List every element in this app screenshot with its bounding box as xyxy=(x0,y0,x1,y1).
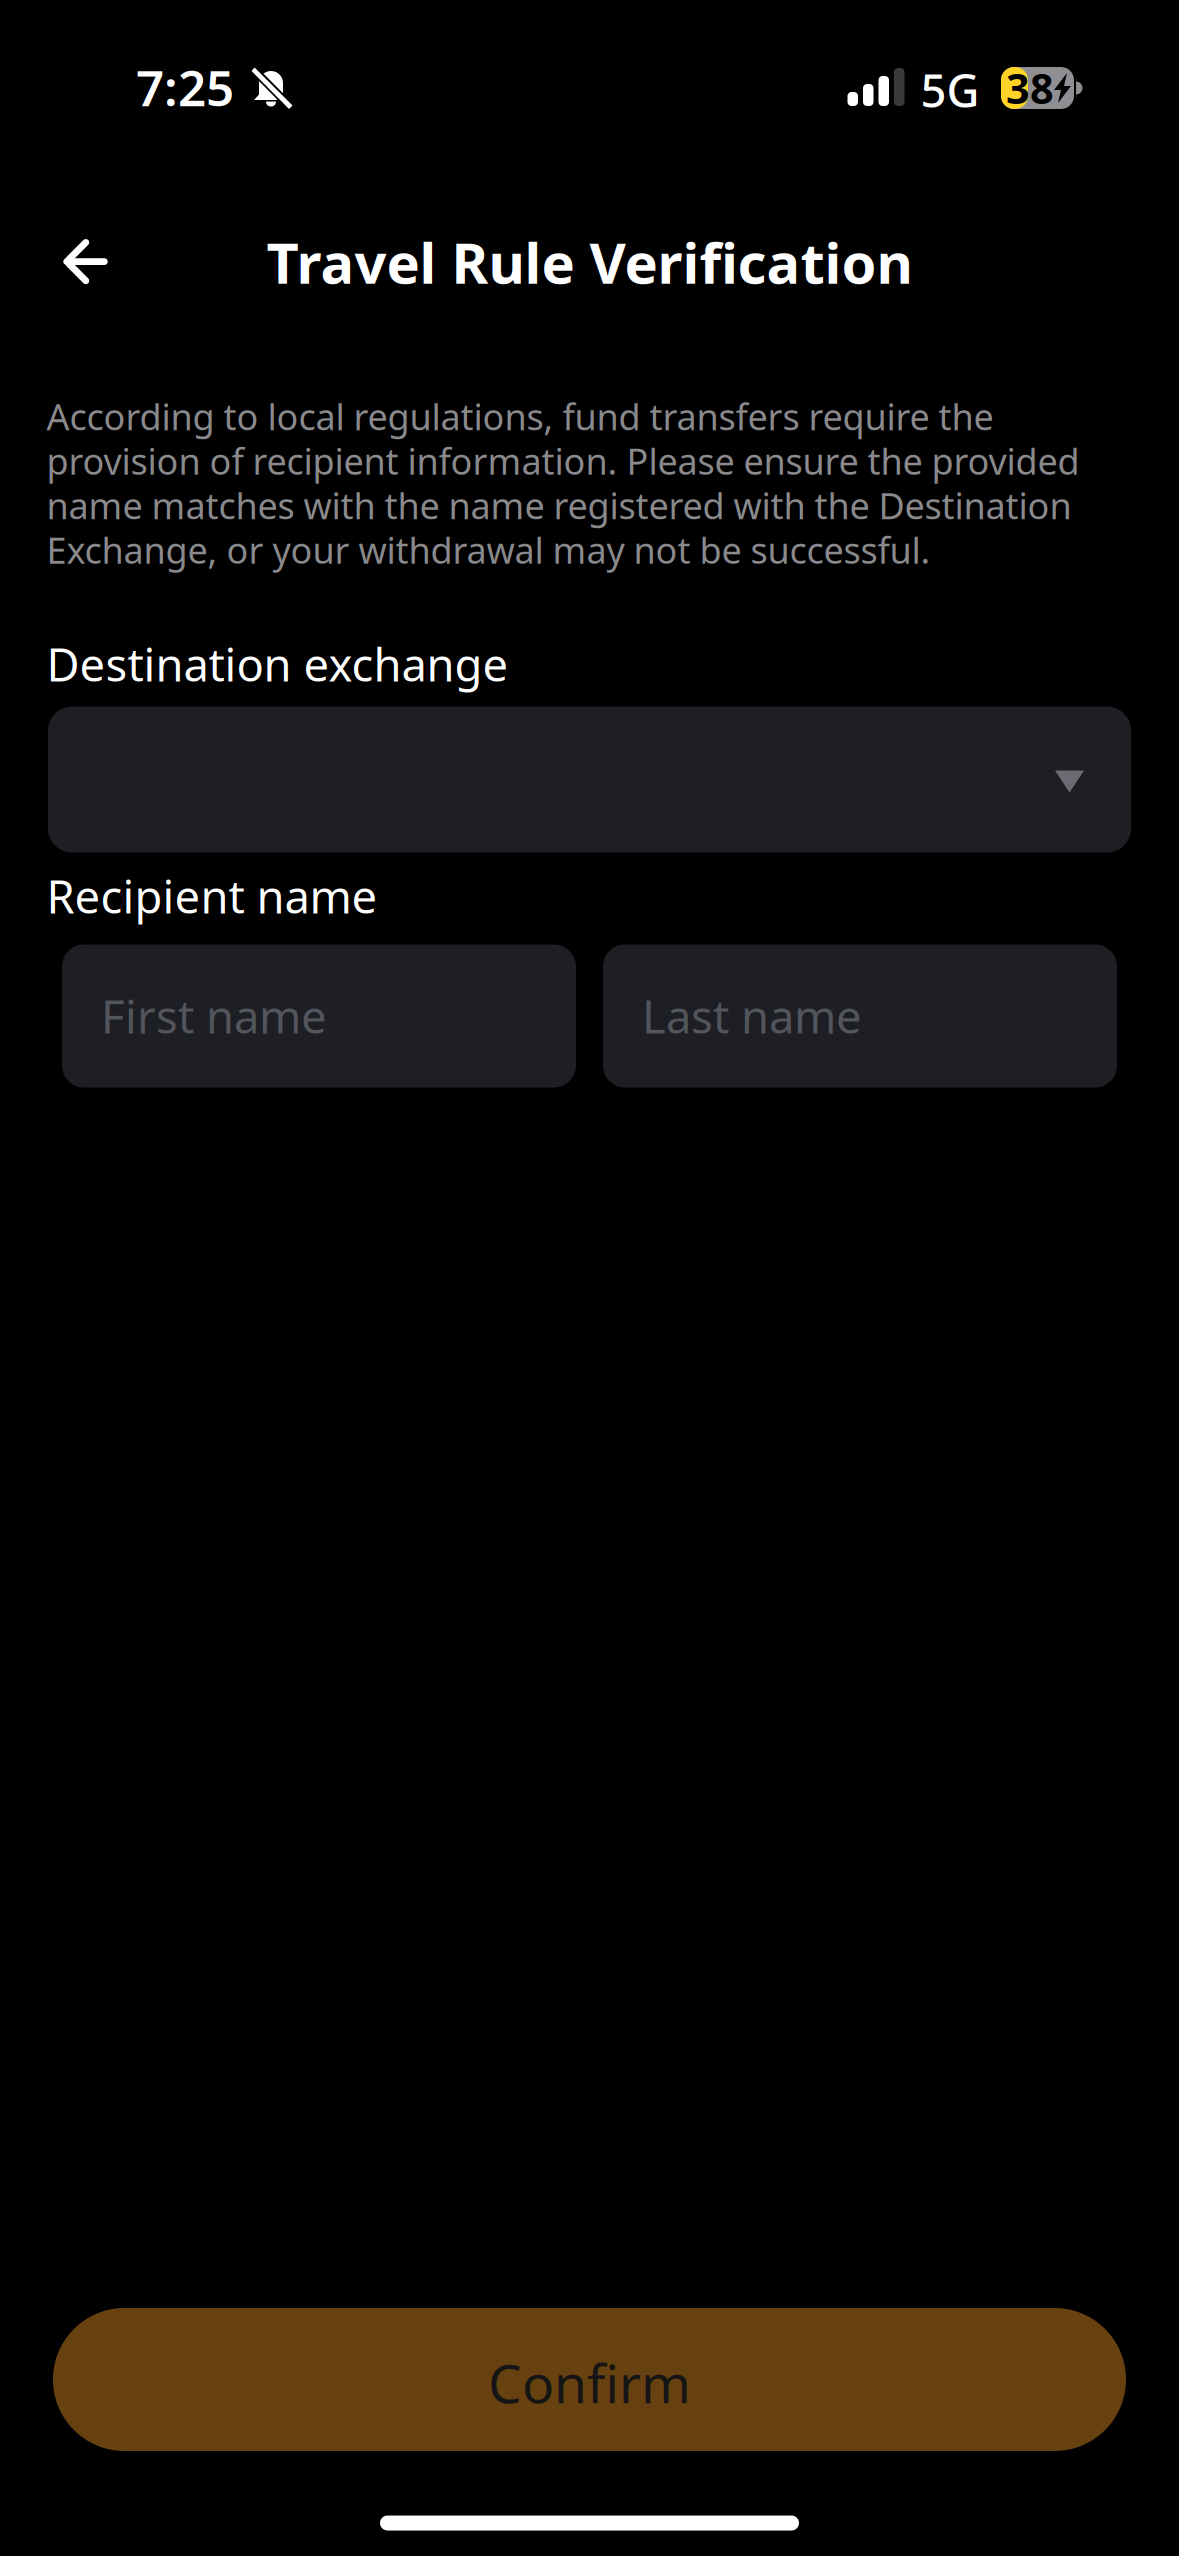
button[interactable]: Last name xyxy=(603,944,1117,1087)
staticText: Recipient name xyxy=(46,866,377,926)
staticText: Exchange, or your withdrawal may not be … xyxy=(46,526,930,574)
staticText: 7:25 xyxy=(136,54,234,120)
staticText: According to local regulations, fund tra… xyxy=(46,392,993,440)
staticText: First name xyxy=(101,986,327,1046)
staticText: 38 xyxy=(1006,61,1054,115)
staticText: Destination exchange xyxy=(46,634,508,694)
staticText: 5G xyxy=(920,60,979,120)
staticText: name matches with the name registered wi… xyxy=(46,481,1071,529)
staticText: Travel Rule Verification xyxy=(266,225,912,299)
staticText: Confirm xyxy=(488,2347,691,2418)
button[interactable]: First name xyxy=(62,944,576,1087)
button[interactable]: Back xyxy=(31,190,139,294)
staticText: Last name xyxy=(642,986,862,1046)
button[interactable]: Select destination exchange xyxy=(48,706,1131,852)
button[interactable]: Confirm xyxy=(53,2308,1126,2451)
staticText: provision of recipient information. Plea… xyxy=(46,437,1079,485)
